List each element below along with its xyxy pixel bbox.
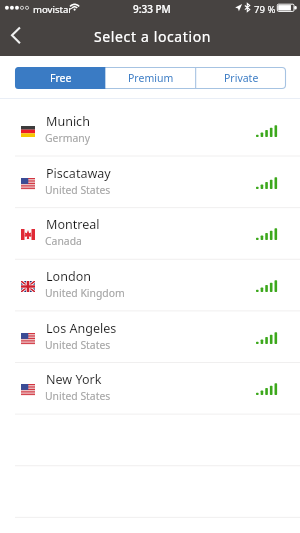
staticText: Piscataway bbox=[46, 165, 111, 182]
button[interactable]: Los Angeles bbox=[0, 311, 300, 363]
staticText: Canada bbox=[45, 234, 82, 248]
staticText: movistar bbox=[33, 3, 73, 16]
staticText: Select a location bbox=[94, 27, 212, 46]
staticText: London bbox=[46, 268, 91, 285]
button[interactable]: Premium bbox=[106, 67, 196, 89]
staticText: New York bbox=[46, 371, 102, 388]
staticText: Premium bbox=[128, 71, 174, 85]
button[interactable]: Free bbox=[15, 67, 106, 89]
staticText: Munich bbox=[46, 113, 90, 130]
button[interactable]: Munich bbox=[0, 104, 300, 156]
button[interactable]: Private bbox=[196, 67, 286, 89]
button[interactable]: Back bbox=[0, 20, 34, 56]
button[interactable] bbox=[0, 517, 300, 533]
button[interactable]: London bbox=[0, 259, 300, 311]
staticText: Montreal bbox=[46, 216, 100, 233]
staticText: 9:33 PM bbox=[133, 2, 171, 16]
staticText: Los Angeles bbox=[46, 320, 117, 337]
staticText: United States bbox=[45, 338, 111, 352]
button[interactable]: New York bbox=[0, 362, 300, 414]
staticText: United States bbox=[45, 389, 111, 403]
staticText: United States bbox=[45, 183, 111, 197]
staticText: 79 % bbox=[254, 3, 276, 16]
staticText: Germany bbox=[45, 131, 90, 145]
staticText: Private bbox=[224, 71, 259, 85]
button[interactable]: Montreal bbox=[0, 207, 300, 259]
staticText: Free bbox=[50, 71, 72, 85]
staticText: United Kingdom bbox=[45, 286, 125, 300]
button[interactable]: Piscataway bbox=[0, 156, 300, 208]
